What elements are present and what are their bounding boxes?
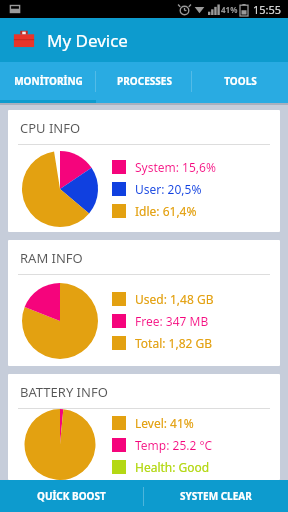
staticText: 15:55 [253,2,282,17]
staticText: MONİTORİNG [14,74,83,88]
staticText: Health: Good [135,459,210,475]
staticText: PROCESSES [117,74,172,88]
button[interactable]: CPU INFO [8,110,280,232]
button[interactable]: SYSTEM CLEAR [144,480,288,512]
button[interactable]: QUİCK BOOST [0,480,143,512]
staticText: QUİCK BOOST [37,489,106,503]
staticText: Total: 1,82 GB [135,335,213,351]
button[interactable]: MONİTORİNG [0,62,96,100]
staticText: Idle: 61,4% [135,203,197,219]
button[interactable]: TOOLS [192,62,288,100]
staticText: My Device [47,29,128,52]
button[interactable]: PROCESSES [96,62,192,100]
other: App icon [13,29,35,51]
staticText: User: 20,5% [135,181,202,197]
staticText: SYSTEM CLEAR [180,489,252,503]
button[interactable]: BATTERY INFO [8,374,280,480]
staticText: Used: 1,48 GB [135,291,214,307]
staticText: TOOLS [224,74,257,88]
staticText: System: 15,6% [135,159,216,175]
staticText: Level: 41% [135,415,194,431]
staticText: 41% [221,4,238,15]
staticText: CPU INFO [20,119,81,137]
staticText: BATTERY INFO [20,383,108,401]
staticText: Free: 347 MB [135,313,209,329]
staticText: Temp: 25.2 °C [135,437,213,453]
button[interactable]: RAM INFO [8,240,280,366]
staticText: RAM INFO [20,249,83,267]
